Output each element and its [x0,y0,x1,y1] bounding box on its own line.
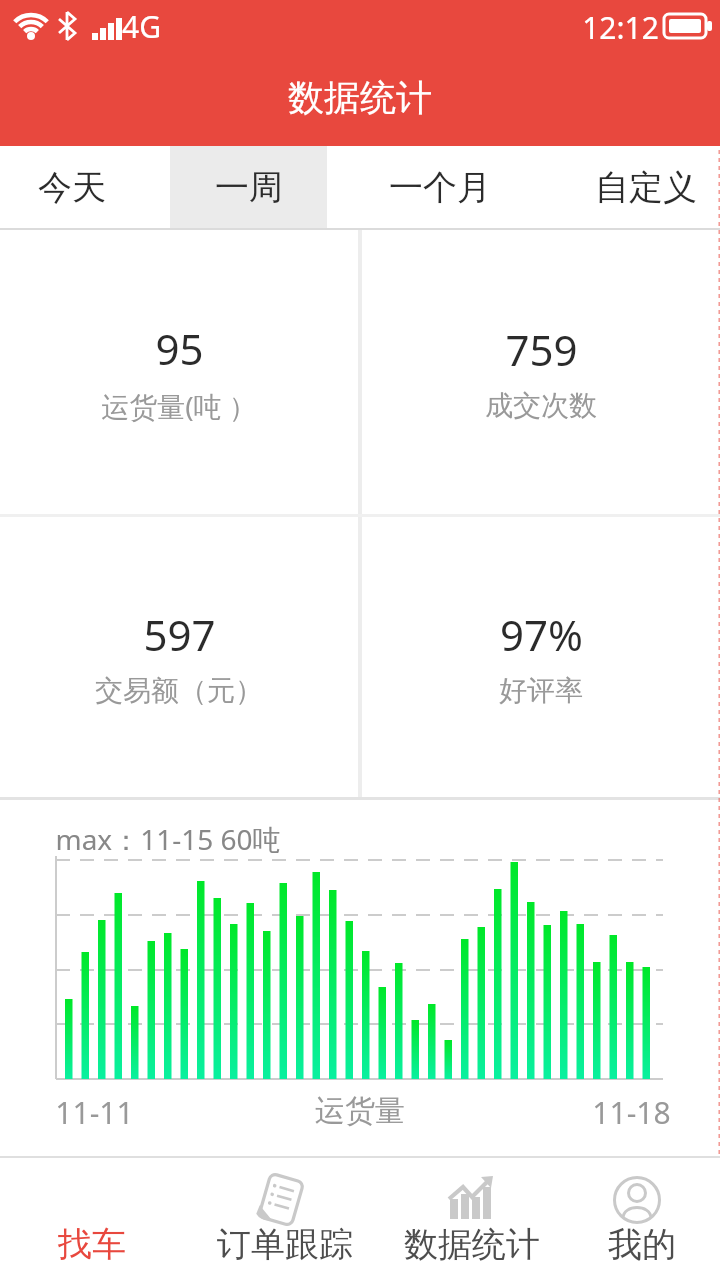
button[interactable]: 数据统计 [392,1158,552,1280]
staticText: 597 [143,606,216,663]
staticText: 自定义 [595,166,697,209]
staticText: 11-18 [592,1092,671,1133]
button[interactable]: 找车 [12,1158,172,1280]
staticText: 订单跟踪 [217,1223,353,1266]
button[interactable]: 订单跟踪 [205,1158,365,1280]
staticText: 4G [122,6,161,47]
button[interactable]: 自定义 [586,146,706,228]
button[interactable]: 597 [0,517,358,797]
staticText: 我的 [608,1223,676,1266]
staticText: 运货量(吨 ） [101,387,257,425]
button[interactable]: 一周 [170,146,327,228]
staticText: 成交次数 [485,388,597,423]
staticText: 95 [155,320,204,377]
staticText: 11-11 [55,1092,134,1133]
staticText: 数据统计 [288,75,432,120]
staticText: 12:12 [582,7,659,48]
staticText: 找车 [58,1223,126,1266]
button[interactable]: 一个月 [380,146,500,228]
staticText: 数据统计 [404,1223,540,1266]
staticText: 一周 [215,166,283,209]
staticText: 交易额（元） [95,673,263,708]
staticText: 759 [505,321,578,378]
button[interactable]: 今天 [12,146,132,228]
staticText: 今天 [38,166,106,209]
button[interactable]: 我的 [562,1158,720,1280]
button[interactable]: 95 [0,230,358,514]
staticText: 运货量 [315,1092,405,1130]
button[interactable]: 97% [362,517,720,797]
staticText: max：11-15 60吨 [55,820,281,858]
staticText: 好评率 [499,673,583,708]
staticText: 一个月 [389,166,491,209]
staticText: 97% [500,606,583,663]
button[interactable]: 759 [362,230,720,514]
